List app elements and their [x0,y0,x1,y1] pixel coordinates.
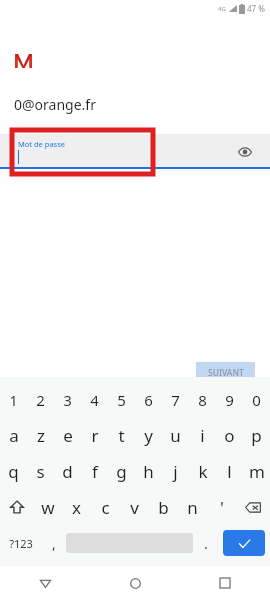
button[interactable]: n [178,489,207,525]
staticText: s [36,460,45,483]
staticText: , [52,534,56,553]
button[interactable]: v [120,489,149,525]
staticText: x [72,496,81,519]
button[interactable]: j [162,453,189,489]
button[interactable]: a [0,417,27,453]
staticText: i [200,424,205,447]
staticText: r [91,424,99,447]
button[interactable]: q [0,453,27,489]
staticText: 5 [117,390,126,410]
button[interactable]: i [189,417,216,453]
button[interactable]: c [91,489,120,525]
staticText: 2 [36,390,45,410]
button[interactable]: s [27,453,54,489]
staticText: k [198,460,208,483]
staticText: 7 [171,390,180,410]
button[interactable]: 5 [108,383,135,417]
button[interactable]: Entrée [223,530,265,556]
button[interactable]: 8 [189,383,216,417]
staticText: j [173,460,178,483]
staticText: SUIVANT [208,367,244,379]
button[interactable]: . [193,525,218,561]
button[interactable]: l [216,453,243,489]
button[interactable]: 1 [0,383,27,417]
staticText: d [62,460,73,483]
button[interactable]: y [135,417,162,453]
staticText: m [249,460,265,483]
button[interactable]: t [108,417,135,453]
staticText: p [251,424,262,447]
staticText: Mot de passe [18,139,66,149]
staticText: . [204,534,208,553]
button[interactable]: d [54,453,81,489]
staticText: f [92,460,98,483]
button[interactable]: Applications récentes [180,566,270,600]
staticText: w [41,496,55,519]
staticText: 4G [218,5,226,13]
staticText: a [9,424,19,447]
staticText: o [224,424,235,447]
staticText: 47 % [247,3,265,14]
button[interactable]: u [162,417,189,453]
staticText: v [130,496,139,519]
button[interactable]: o [216,417,243,453]
staticText: l [227,460,232,483]
staticText: ?123 [9,536,33,551]
button[interactable]: 6 [135,383,162,417]
button[interactable]: Maj [0,489,33,525]
button[interactable]: x [62,489,91,525]
button[interactable]: 4 [81,383,108,417]
staticText: 1 [9,390,18,410]
button[interactable]: 2 [27,383,54,417]
button[interactable]: Mot de passe [0,134,270,169]
staticText: q [8,460,19,483]
button[interactable]: , [41,525,66,561]
staticText: b [158,496,169,519]
staticText: c [101,496,110,519]
staticText: u [170,424,181,447]
button[interactable]: f [81,453,108,489]
button[interactable]: Retour arrière [236,489,270,525]
button[interactable]: m [243,453,270,489]
button[interactable]: SUIVANT [196,362,255,384]
button[interactable]: g [108,453,135,489]
staticText: 4 [90,390,99,410]
staticText: t [118,424,125,447]
button[interactable]: b [149,489,178,525]
button[interactable]: w [33,489,62,525]
button[interactable]: 0 [243,383,270,417]
button[interactable]: z [27,417,54,453]
button[interactable]: 7 [162,383,189,417]
staticText: h [143,460,154,483]
staticText: 0@orange.fr [14,95,96,114]
button[interactable]: Accueil [90,566,180,600]
button[interactable]: k [189,453,216,489]
button[interactable]: r [81,417,108,453]
button[interactable]: 9 [216,383,243,417]
staticText: 3 [63,390,72,410]
button[interactable]: p [243,417,270,453]
staticText: n [187,496,198,519]
staticText: ' [220,496,224,519]
staticText: e [63,424,73,447]
staticText: 6 [144,390,153,410]
other: Afficher le mot de passe [238,145,252,159]
staticText: y [144,424,153,447]
button[interactable]: e [54,417,81,453]
button[interactable]: Retour [0,566,90,600]
button[interactable]: ?123 [0,525,41,561]
button[interactable]: ' [207,489,236,525]
staticText: 8 [198,390,207,410]
button[interactable]: h [135,453,162,489]
staticText: 9 [225,390,234,410]
staticText: g [116,460,127,483]
staticText: z [37,424,45,447]
staticText: 0 [252,390,261,410]
button[interactable]: 3 [54,383,81,417]
